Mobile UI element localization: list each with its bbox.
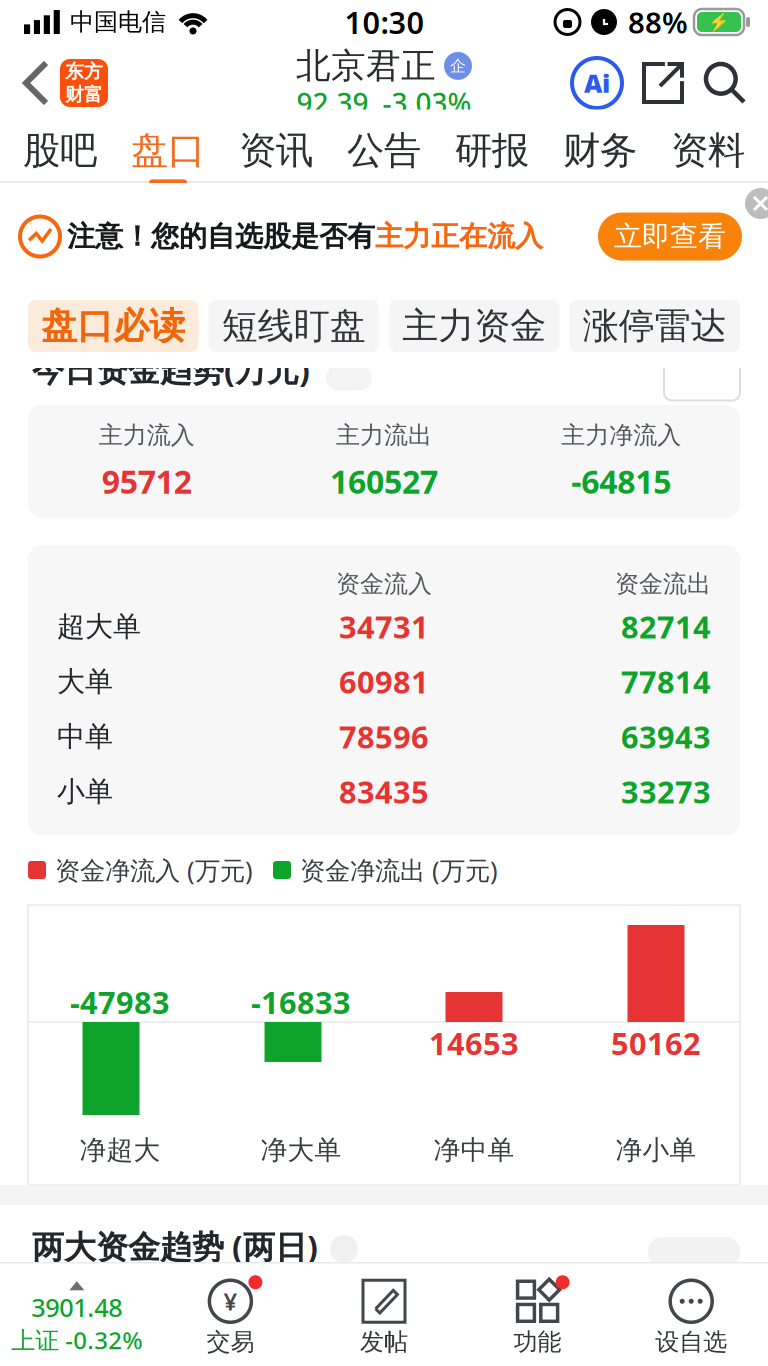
button[interactable]: 搜索 [706,64,768,102]
button[interactable]: 研报 [438,110,546,195]
staticText: 涨停雷达 [583,304,727,348]
button[interactable]: 资讯 [222,110,330,195]
staticText: 92.39 -3.03% [296,84,471,121]
staticText: 设自选 [655,1327,727,1357]
staticText: 160527 [330,460,438,502]
staticText: 大单 [57,664,113,699]
staticText: ⚡ [708,12,730,32]
staticText: 50162 [611,1023,701,1063]
staticText: 63943 [621,716,711,757]
button[interactable]: Back [0,63,60,103]
staticText: 研报 [455,128,529,173]
staticText: 净超大 [79,1134,160,1166]
staticText: 资金净流入 (万元) [55,853,253,887]
button[interactable]: 设自选 [614,1277,768,1357]
button[interactable]: 主力资金 [389,300,559,352]
button[interactable]: 短线盯盘 [208,300,379,352]
staticText: 14653 [429,1023,519,1063]
staticText: 净小单 [615,1134,696,1166]
staticText: 立即查看 [614,219,726,254]
staticText: 中单 [57,719,113,754]
button[interactable]: 东方财富 [60,59,108,107]
staticText: 10:30 [344,2,424,42]
staticText: -47983 [70,982,170,1022]
staticText: 资料 [671,128,745,173]
staticText: 短线盯盘 [222,304,366,348]
button[interactable]: 发帖 [307,1277,461,1357]
staticText: Ai [584,66,610,100]
staticText: 上证 -0.32% [11,1324,142,1356]
staticText: -16833 [251,982,351,1022]
button[interactable]: 关闭 [737,183,768,214]
staticText: 中国电信 [70,7,166,37]
staticText: 82714 [621,606,711,647]
staticText: -64815 [571,460,671,502]
staticText: 今日资金趋势(万元) [32,348,310,390]
staticText: 净中单 [433,1134,514,1166]
staticText: 交易 [206,1327,254,1357]
staticText: 33273 [621,771,711,812]
staticText: 主力流入 [99,420,195,450]
staticText: ¥ [223,1285,237,1317]
button[interactable]: 功能 [461,1277,614,1357]
staticText: 净大单 [260,1134,341,1166]
staticText: 34731 [339,606,429,647]
button[interactable]: 股吧 [6,110,114,195]
staticText: 资金流入 [336,569,432,599]
staticText: 60981 [339,661,429,702]
staticText: 资金流出 [615,569,711,599]
staticText: 注意！您的自选股是否有 [67,219,375,254]
button[interactable]: 立即查看 [598,212,742,260]
button[interactable]: 资料 [654,110,762,195]
staticText: 发帖 [360,1327,408,1357]
staticText: 主力正在流入 [375,219,543,254]
staticText: 88% [628,2,688,41]
staticText: 盘口 [131,128,205,173]
button[interactable]: 公告 [330,110,438,195]
staticText: 超大单 [57,609,141,644]
staticText: 财务 [563,128,637,173]
staticText: 主力流出 [336,420,432,450]
staticText: 公告 [347,128,421,173]
staticText: 财富 [65,83,103,106]
button[interactable]: 交易 [154,1277,307,1357]
staticText: 主力净流入 [561,420,681,450]
staticText: 78596 [339,716,429,757]
staticText: 77814 [621,661,711,702]
staticText: 3901.48 [31,1290,122,1324]
staticText: 北京君正 [296,45,436,87]
staticText: 东方 [65,60,103,83]
staticText: 主力资金 [402,304,546,348]
staticText: 资金净流出 (万元) [300,853,498,887]
button[interactable]: 盘口必读 [28,300,198,352]
staticText: 小单 [57,774,113,809]
staticText: 功能 [514,1327,562,1357]
staticText: 股吧 [23,128,97,173]
staticText: 盘口必读 [41,304,185,348]
button[interactable]: 盘口 [114,110,222,195]
button[interactable]: Ai 助手 [572,58,622,108]
staticText: 两大资金趋势 (两日) [32,1225,318,1267]
button[interactable]: 上证指数 [0,1277,154,1356]
button[interactable]: 涨停雷达 [569,300,740,352]
button[interactable]: 财务 [546,110,654,195]
staticText: 95712 [102,460,192,502]
staticText: 企 [450,56,466,76]
staticText: 83435 [339,771,429,812]
staticText: 资讯 [239,128,313,173]
button[interactable]: 分享 [644,64,682,102]
